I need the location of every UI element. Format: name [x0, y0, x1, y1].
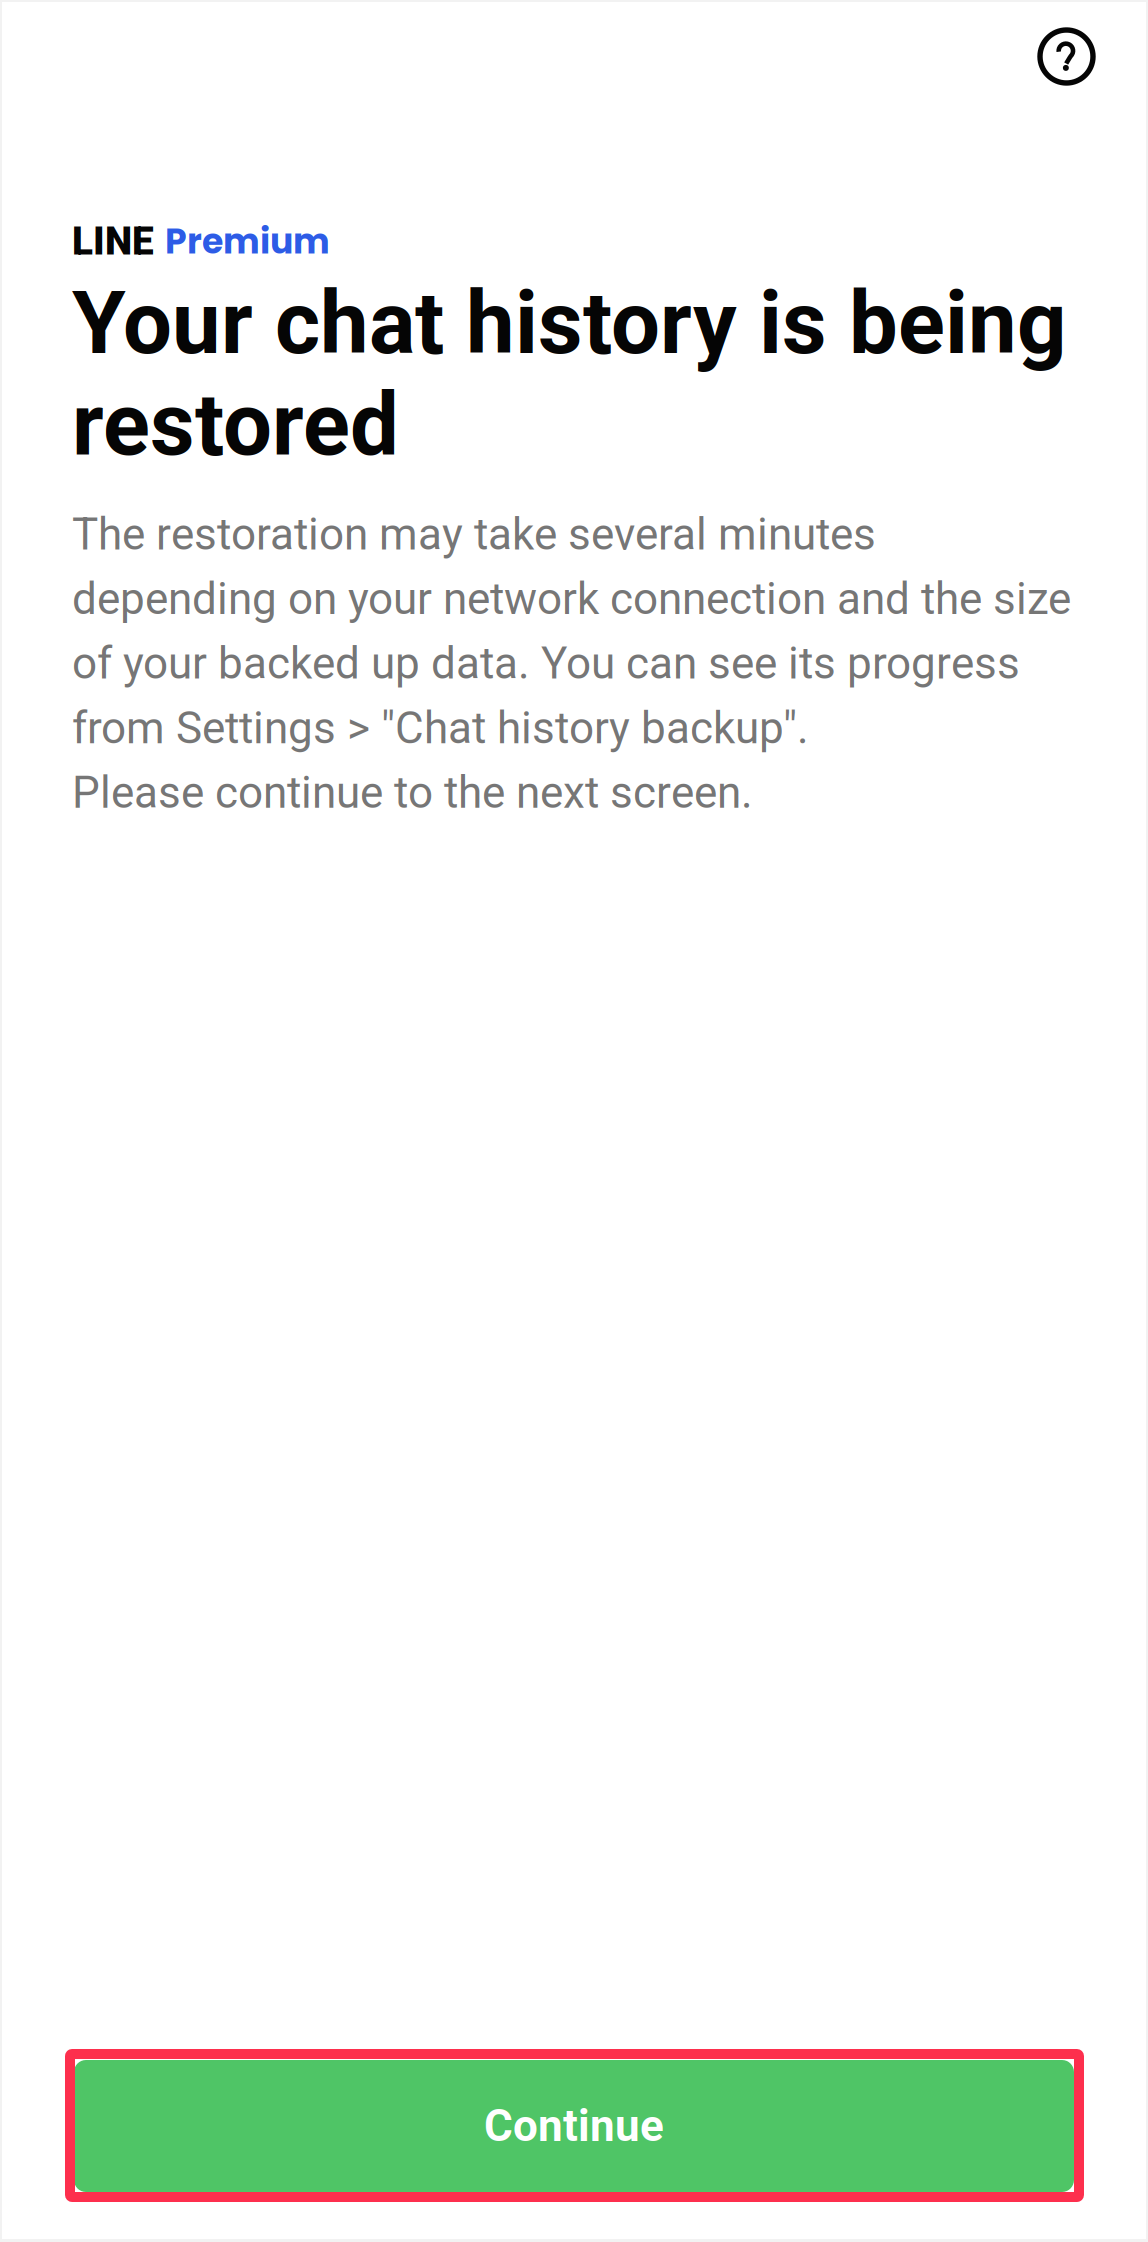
staticText: The restoration may take several minutes… [72, 509, 1071, 818]
button[interactable]: Help [1014, 0, 1148, 106]
staticText: LINE [72, 219, 154, 264]
staticText: Premium [165, 217, 330, 265]
staticText: Your chat history is being restored [72, 272, 1067, 476]
button[interactable]: Continue [74, 2060, 1074, 2192]
staticText: Continue [484, 2100, 664, 2152]
